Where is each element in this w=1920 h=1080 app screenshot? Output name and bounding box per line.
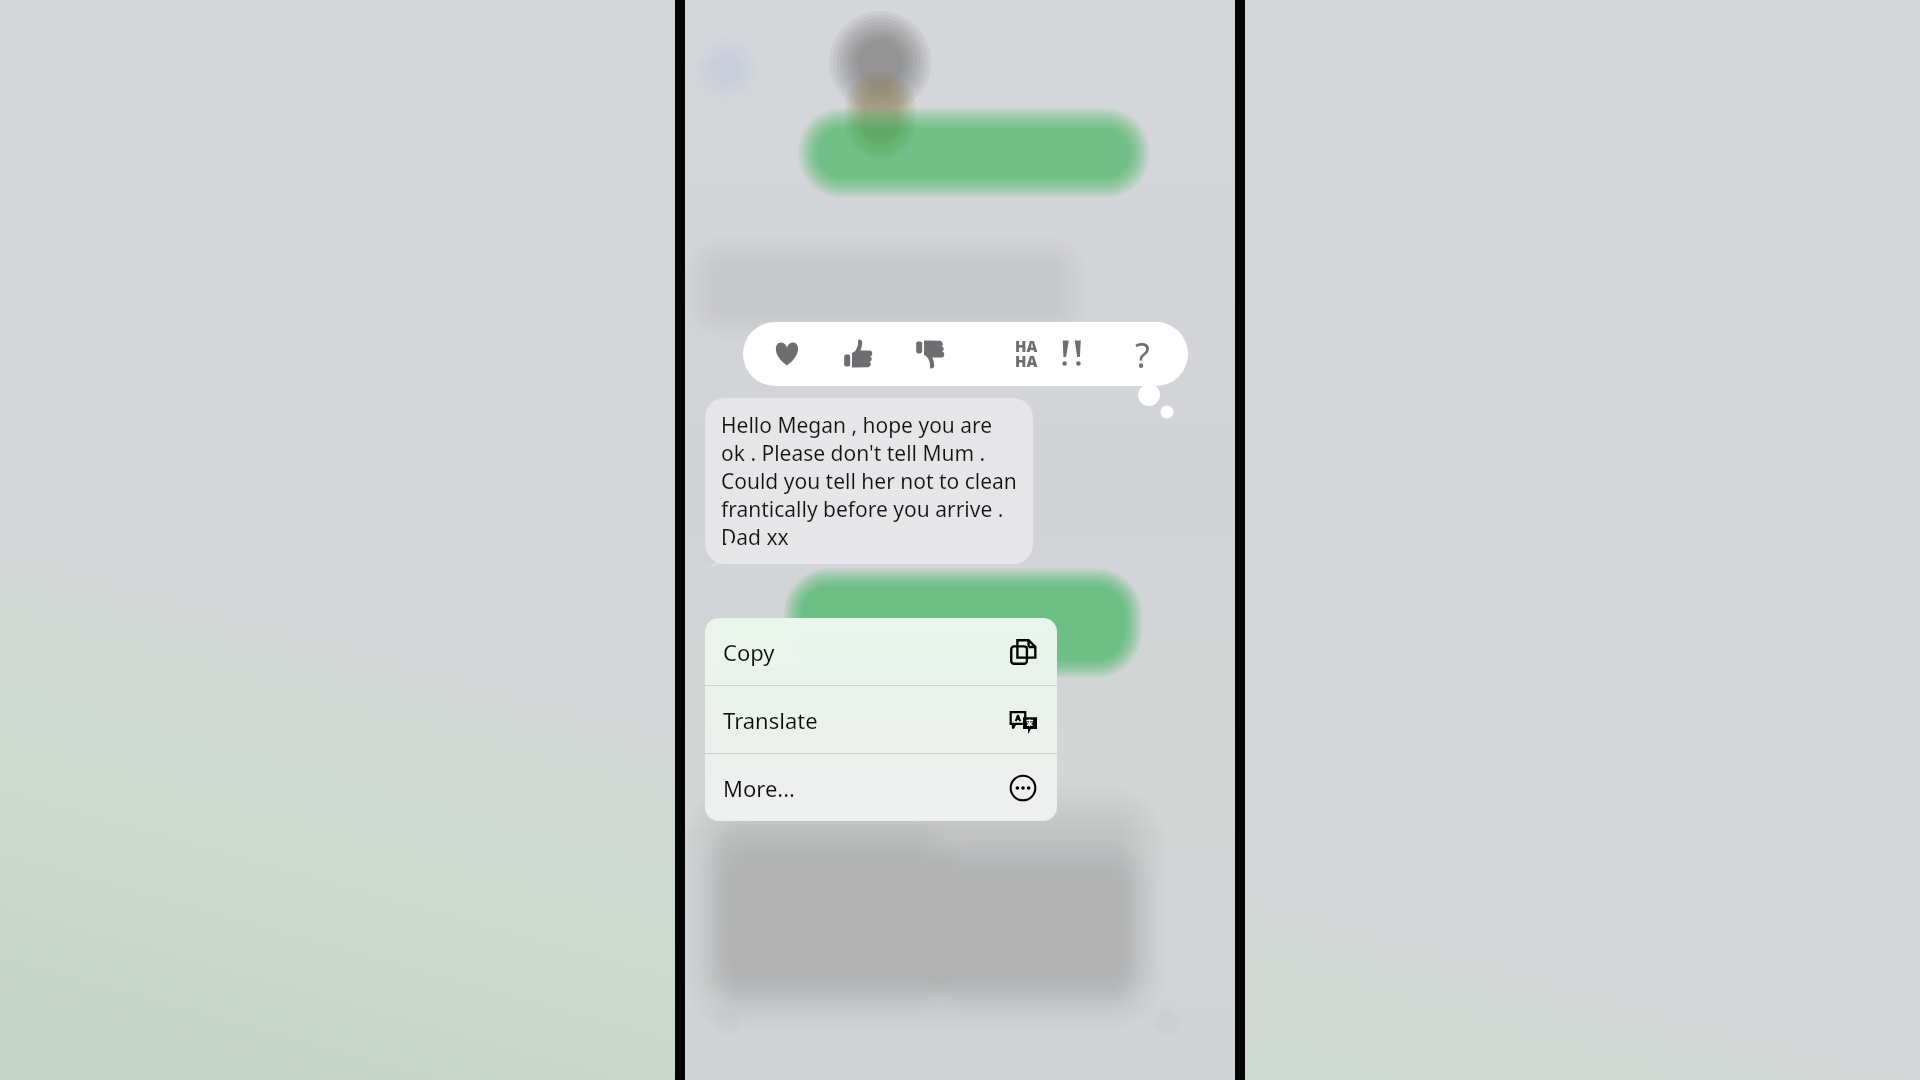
staticText: HA <box>1015 336 1038 356</box>
staticText: Hello Megan , hope you are ok . Please d… <box>721 411 1017 551</box>
staticText: More... <box>723 773 796 803</box>
staticText: Copy <box>723 637 775 667</box>
staticText: HA <box>1015 351 1038 371</box>
button[interactable]: Hello Megan , hope you are ok . Please d… <box>705 398 1033 564</box>
button[interactable]: Translate <box>705 686 1057 753</box>
button[interactable]: Love <box>759 326 815 382</box>
button[interactable]: Exclamation <box>1045 326 1101 382</box>
button[interactable]: Haha <box>973 326 1029 382</box>
staticText: Translate <box>723 705 818 735</box>
button[interactable]: Copy <box>705 618 1057 685</box>
button[interactable]: Thumbs up <box>830 326 886 382</box>
staticText: ? <box>1135 332 1150 378</box>
button[interactable]: Thumbs down <box>902 326 958 382</box>
button[interactable]: More... <box>705 754 1057 821</box>
button[interactable]: Question <box>1116 326 1172 382</box>
